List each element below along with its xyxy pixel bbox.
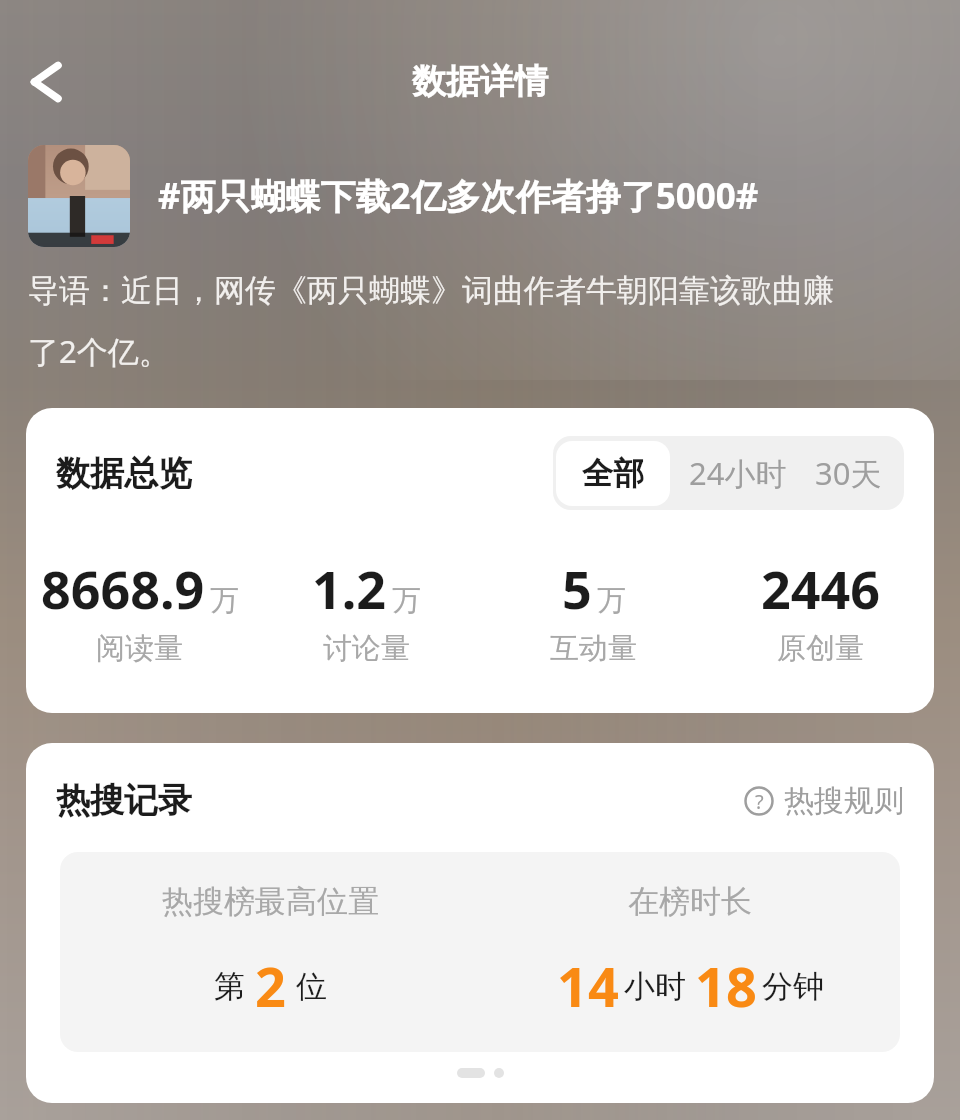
staticText: 热搜记录 [56,779,192,822]
button[interactable]: 30天 [803,436,904,510]
staticText: 数据详情 [412,60,548,103]
button[interactable]: 1.2 [253,553,480,667]
staticText: 了2个亿。 [28,330,170,372]
staticText: 第 [214,967,245,1006]
staticText: 万 [210,582,239,619]
staticText: 数据总览 [56,452,192,495]
staticText: 2446 [761,553,880,624]
staticText: 导语：近日，网传《两只蝴蝶》词曲作者牛朝阳靠该歌曲赚 [28,271,834,310]
button[interactable]: 全部 [556,441,670,506]
button[interactable]: 2446 [707,553,934,667]
button[interactable]: ? [744,782,904,820]
button[interactable]: Back [12,50,76,114]
staticText: 8668.9 [41,553,205,624]
button[interactable]: 8668.9 [26,553,253,667]
staticText: 热搜规则 [784,782,904,820]
staticText: 全部 [582,454,644,493]
staticText: 原创量 [777,630,864,667]
button[interactable]: 24小时 [673,436,803,510]
staticText: 2 [255,949,286,1023]
staticText: 小时 [624,967,686,1006]
staticText: 分钟 [762,967,824,1006]
staticText: 万 [392,582,421,619]
staticText: 热搜榜最高位置 [162,882,379,921]
staticText: 讨论量 [323,630,410,667]
staticText: 位 [296,967,327,1006]
staticText: 阅读量 [96,630,183,667]
staticText: 万 [597,582,626,619]
button[interactable]: 5 [480,553,707,667]
staticText: 24小时 [689,452,787,494]
staticText: 30天 [815,452,882,494]
staticText: ? [755,788,764,815]
button[interactable]: Topic image [28,145,130,247]
staticText: #两只蝴蝶下载2亿多次作者挣了5000# [158,172,759,220]
staticText: 在榜时长 [628,882,752,921]
staticText: 5 [562,553,592,624]
staticText: 1.2 [312,553,387,624]
staticText: 互动量 [550,630,637,667]
staticText: 14 [557,949,619,1023]
staticText: 18 [695,949,757,1023]
